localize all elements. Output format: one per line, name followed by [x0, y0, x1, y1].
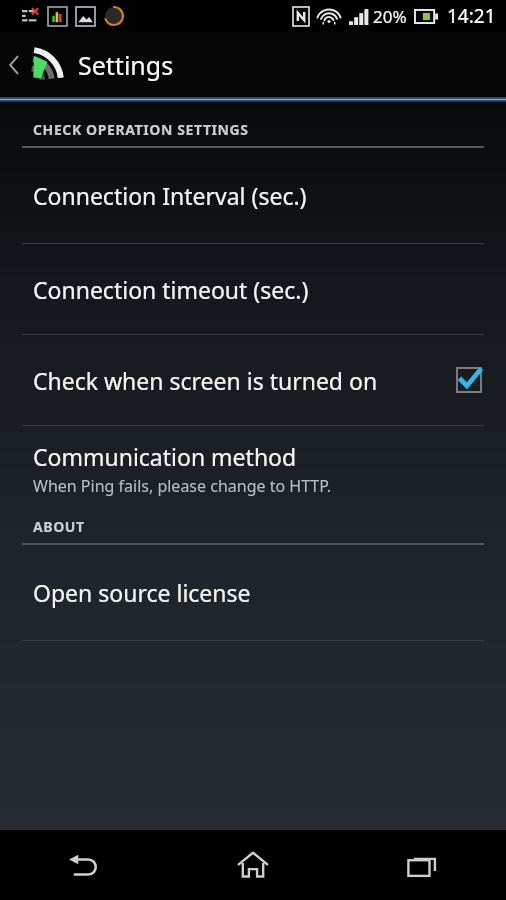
- staticText: Settings: [78, 48, 174, 82]
- staticText: Connection Interval (sec.): [33, 180, 307, 211]
- staticText: 20%: [373, 5, 407, 28]
- other: Check when screen is turned on: [454, 365, 484, 395]
- staticText: Connection timeout (sec.): [33, 274, 309, 305]
- button[interactable]: Back: [0, 830, 168, 900]
- staticText: ABOUT: [33, 517, 85, 536]
- staticText: When Ping fails, please change to HTTP.: [33, 475, 332, 497]
- button[interactable]: Recent apps: [337, 830, 506, 900]
- staticText: Open source license: [33, 577, 251, 608]
- button[interactable]: Open source license: [0, 545, 506, 640]
- button[interactable]: Connection Interval (sec.): [0, 148, 506, 243]
- staticText: Communication method: [33, 441, 297, 472]
- staticText: CHECK OPERATION SETTINGS: [33, 120, 249, 139]
- button[interactable]: Navigate up: [0, 32, 72, 97]
- button[interactable]: Connection timeout (sec.): [0, 244, 506, 334]
- button[interactable]: Check when screen is turned on: [0, 335, 506, 425]
- staticText: 14:21: [447, 3, 496, 29]
- staticText: Check when screen is turned on: [33, 365, 378, 396]
- button[interactable]: Home: [168, 830, 337, 900]
- button[interactable]: Communication method: [0, 426, 506, 511]
